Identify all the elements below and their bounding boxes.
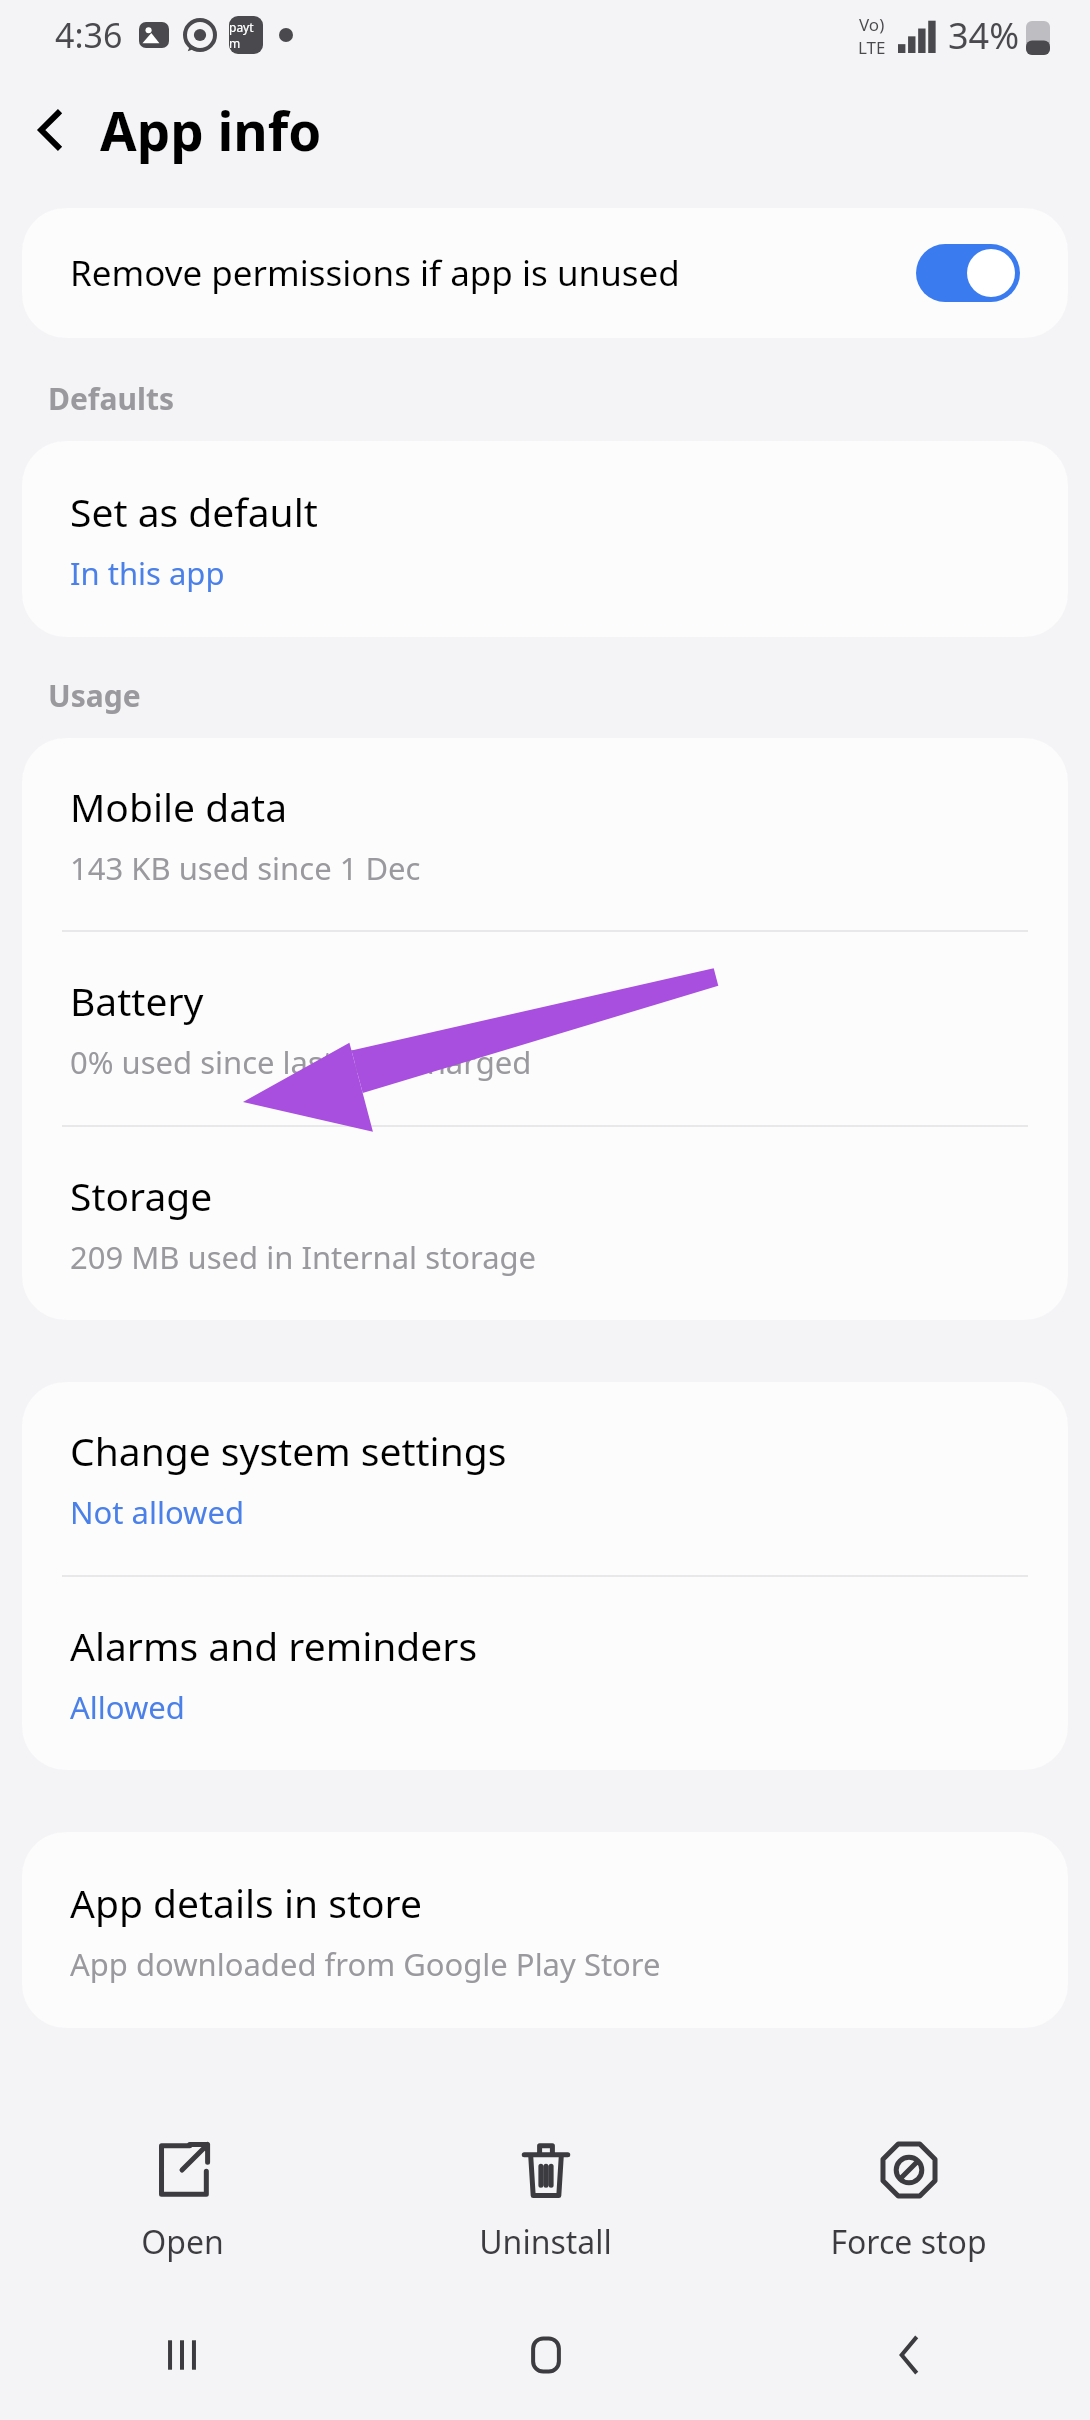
button[interactable]: Home <box>364 2290 727 2420</box>
button[interactable]: App details in store <box>22 1832 1068 2028</box>
staticText: Set as default <box>70 485 318 538</box>
staticText: Storage <box>70 1169 213 1222</box>
button[interactable]: Force stop <box>727 2112 1090 2290</box>
button[interactable]: Back <box>0 80 100 180</box>
staticText: 0% used since last fully charged <box>70 1041 532 1083</box>
staticText: paytm <box>229 19 263 51</box>
button[interactable]: Set as default <box>22 441 1068 637</box>
staticText: Remove permissions if app is unused <box>70 249 896 297</box>
button[interactable]: Battery <box>22 932 1068 1125</box>
staticText: Battery <box>70 974 204 1027</box>
staticText: App info <box>100 94 322 166</box>
staticText: 209 MB used in Internal storage <box>70 1236 537 1278</box>
staticText: Usage <box>48 675 141 716</box>
staticText: LTE <box>858 36 886 59</box>
staticText: Alarms and reminders <box>70 1619 478 1672</box>
staticText: In this app <box>70 552 225 594</box>
staticText: App details in store <box>70 1876 422 1929</box>
button[interactable]: Alarms and reminders <box>22 1577 1068 1770</box>
staticText: Vo) <box>859 13 885 36</box>
staticText: Change system settings <box>70 1424 507 1477</box>
staticText: 34% <box>948 11 1020 60</box>
button[interactable]: Remove permissions toggle <box>916 244 1020 302</box>
button[interactable]: Remove permissions if app is unused <box>22 208 1068 338</box>
button[interactable]: Storage <box>22 1127 1068 1320</box>
staticText: Uninstall <box>479 2220 612 2264</box>
staticText: Allowed <box>70 1686 185 1728</box>
staticText: Mobile data <box>70 780 288 833</box>
staticText: Force stop <box>830 2220 987 2264</box>
button[interactable]: Change system settings <box>22 1382 1068 1575</box>
button[interactable]: Recent apps <box>0 2290 364 2420</box>
staticText: 4:36 <box>55 12 123 58</box>
staticText: Not allowed <box>70 1491 245 1533</box>
staticText: 143 KB used since 1 Dec <box>70 847 421 889</box>
button[interactable]: Open <box>0 2112 364 2290</box>
button[interactable]: Uninstall <box>364 2112 727 2290</box>
button[interactable]: Back <box>727 2290 1090 2420</box>
staticText: Defaults <box>48 378 174 419</box>
button[interactable]: Mobile data <box>22 738 1068 930</box>
staticText: Open <box>141 2220 224 2264</box>
staticText: App downloaded from Google Play Store <box>70 1943 661 1985</box>
